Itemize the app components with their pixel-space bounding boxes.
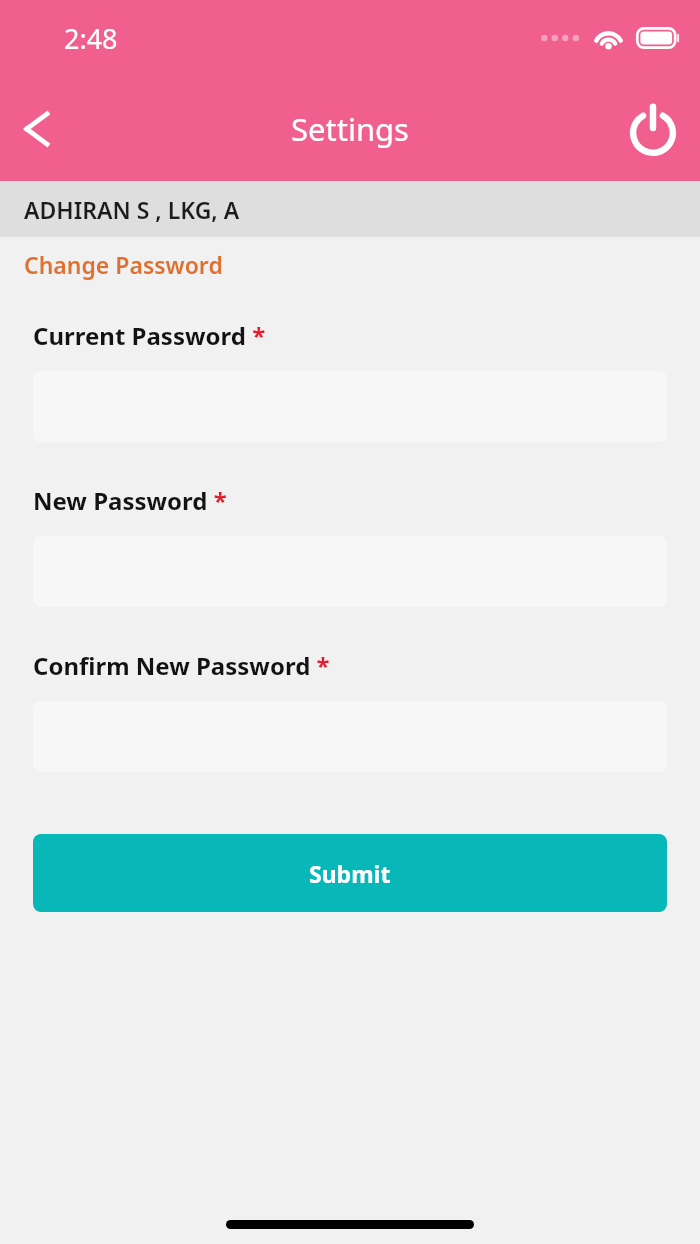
button[interactable]: Back: [0, 92, 74, 166]
button[interactable]: Submit: [33, 834, 667, 912]
button[interactable]: Power / Logout: [616, 92, 690, 166]
staticText: Confirm New Password *: [33, 649, 330, 682]
staticText: Current Password *: [33, 319, 266, 352]
staticText: 2:48: [64, 20, 118, 57]
staticText: Settings: [291, 108, 409, 150]
staticText: Submit: [309, 858, 391, 889]
staticText: ADHIRAN S , LKG, A: [24, 194, 240, 225]
staticText: Change Password: [24, 249, 223, 280]
staticText: New Password *: [33, 484, 227, 517]
